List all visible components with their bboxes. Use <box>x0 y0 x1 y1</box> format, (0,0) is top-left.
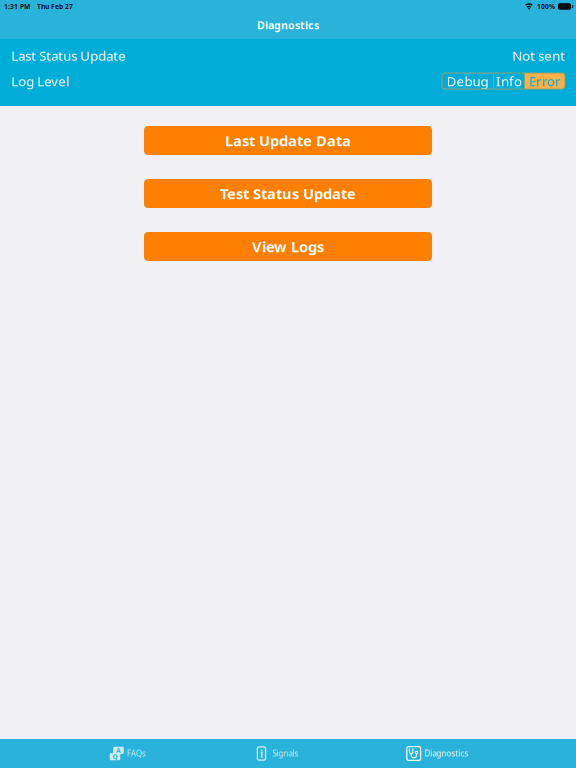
staticText: 100% <box>537 2 555 11</box>
staticText: View Logs <box>252 237 324 256</box>
button[interactable]: Diagnostics <box>366 739 508 768</box>
button[interactable]: View Logs <box>144 232 432 261</box>
staticText: Debug <box>446 72 488 90</box>
button[interactable]: i <box>217 739 338 768</box>
button[interactable]: Last Update Data <box>144 126 432 155</box>
staticText: Diagnostics <box>424 748 468 759</box>
staticText: Log Level <box>11 72 69 90</box>
staticText: Q <box>112 752 117 761</box>
staticText: Error <box>529 72 561 90</box>
button[interactable]: Error <box>525 73 565 89</box>
button[interactable]: Info <box>494 73 524 89</box>
staticText: 1:31 PM <box>4 2 30 11</box>
staticText: i <box>260 746 263 761</box>
staticText: Not sent <box>512 47 565 64</box>
staticText: Diagnostics <box>257 18 319 32</box>
staticText: Last Status Update <box>11 47 126 64</box>
staticText: Info <box>496 72 522 90</box>
staticText: FAQs <box>127 748 146 759</box>
button[interactable]: Test Status Update <box>144 179 432 208</box>
staticText: Signals <box>272 748 298 759</box>
staticText: A <box>116 746 121 755</box>
staticText: Thu Feb 27 <box>37 2 73 11</box>
button[interactable]: A <box>70 739 186 768</box>
staticText: Last Update Data <box>225 131 351 150</box>
button[interactable]: Debug <box>442 73 493 89</box>
staticText: Test Status Update <box>220 184 356 203</box>
